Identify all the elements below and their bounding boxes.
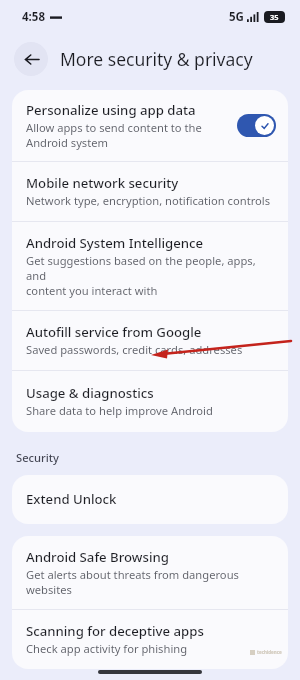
button[interactable]: Back bbox=[14, 42, 48, 76]
button[interactable]: Android System Intelligence bbox=[12, 222, 288, 311]
staticText: 5G bbox=[229, 9, 244, 25]
staticText: Android Safe Browsing bbox=[26, 548, 169, 566]
staticText: Autofill service from Google bbox=[26, 323, 202, 341]
staticText: Check app activity for phishing bbox=[26, 641, 188, 656]
staticText: techidence bbox=[257, 649, 282, 655]
button[interactable]: Usage & diagnostics bbox=[12, 371, 288, 432]
staticText: Scanning for deceptive apps bbox=[26, 622, 204, 640]
button[interactable]: Personalize using app data bbox=[12, 90, 288, 162]
button[interactable]: Personalize using app data toggle bbox=[237, 114, 276, 137]
staticText: 35 bbox=[270, 12, 279, 22]
staticText: Security bbox=[16, 450, 60, 465]
button[interactable]: Extend Unlock bbox=[12, 475, 288, 524]
staticText: Allow apps to send content to the Androi… bbox=[26, 120, 202, 150]
staticText: Mobile network security bbox=[26, 174, 179, 192]
staticText: Saved passwords, credit cards, addresses bbox=[26, 342, 243, 357]
staticText: More security & privacy bbox=[60, 47, 253, 71]
staticText: Network type, encryption, notification c… bbox=[26, 193, 271, 208]
staticText: Extend Unlock bbox=[26, 490, 117, 508]
button[interactable]: Android Safe Browsing bbox=[12, 536, 288, 610]
staticText: Personalize using app data bbox=[26, 101, 196, 119]
staticText: 4:58 bbox=[22, 9, 45, 25]
staticText: Android System Intelligence bbox=[26, 234, 204, 252]
staticText: Get alerts about threats from dangerous … bbox=[26, 567, 239, 597]
button[interactable]: Mobile network security bbox=[12, 162, 288, 222]
button[interactable]: Scanning for deceptive apps bbox=[12, 610, 288, 669]
staticText: Get suggestions based on the people, app… bbox=[26, 253, 276, 298]
button[interactable]: Autofill service from Google bbox=[12, 311, 288, 371]
staticText: Usage & diagnostics bbox=[26, 384, 154, 402]
staticText: Share data to help improve Android bbox=[26, 403, 213, 418]
